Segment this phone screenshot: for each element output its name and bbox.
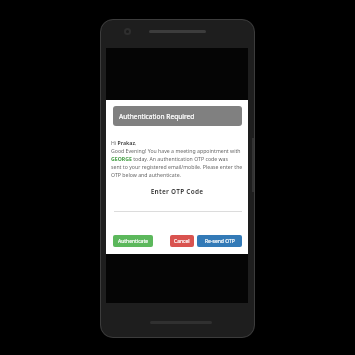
- button[interactable]: Enter OTP Code input field: [114, 198, 242, 212]
- button[interactable]: Re-send OTP: [197, 235, 242, 247]
- staticText: Re-send OTP: [205, 238, 235, 245]
- button[interactable]: Authenticate: [113, 235, 153, 247]
- staticText: Authentication Required: [119, 112, 195, 121]
- staticText: Cancel: [174, 238, 190, 245]
- staticText: Hi Prakaz,: [111, 139, 137, 146]
- button[interactable]: Cancel: [170, 235, 194, 247]
- staticText: Enter OTP Code: [106, 187, 248, 196]
- staticText: Good Evening! You have a meeting appoint…: [111, 147, 243, 178]
- staticText: Authenticate: [118, 238, 149, 245]
